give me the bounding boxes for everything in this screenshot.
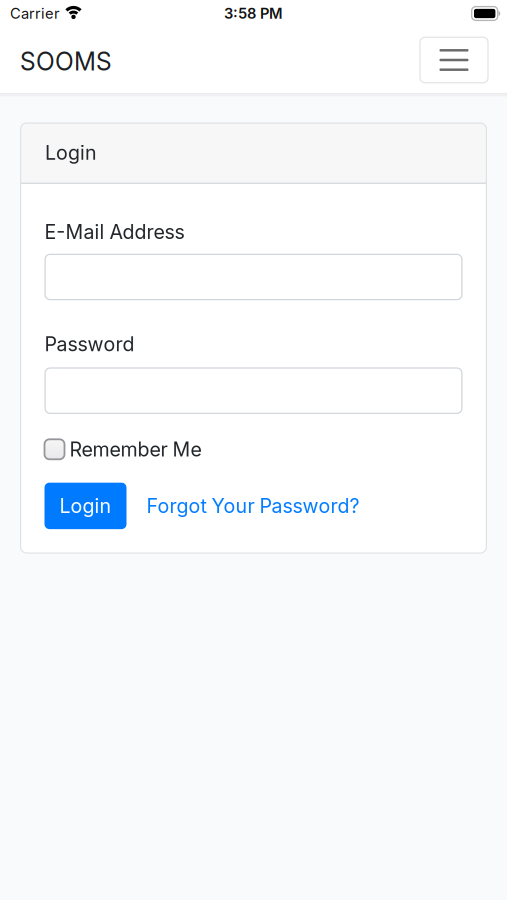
staticText: Forgot Your Password?: [146, 494, 359, 518]
staticText: Login: [59, 494, 111, 518]
staticText: E-Mail Address: [44, 220, 184, 244]
staticText: Login: [45, 141, 97, 164]
staticText: Password: [44, 332, 134, 356]
staticText: Remember Me: [69, 437, 201, 461]
button[interactable]: Toggle navigation: [420, 37, 488, 83]
button[interactable]: Login: [44, 483, 126, 529]
button[interactable]: Forgot Your Password?: [146, 494, 359, 518]
staticText: Carrier: [10, 5, 60, 22]
staticText: 3:58 PM: [224, 5, 283, 22]
staticText: SOOMS: [20, 47, 112, 76]
button[interactable]: Remember Me: [44, 437, 201, 461]
